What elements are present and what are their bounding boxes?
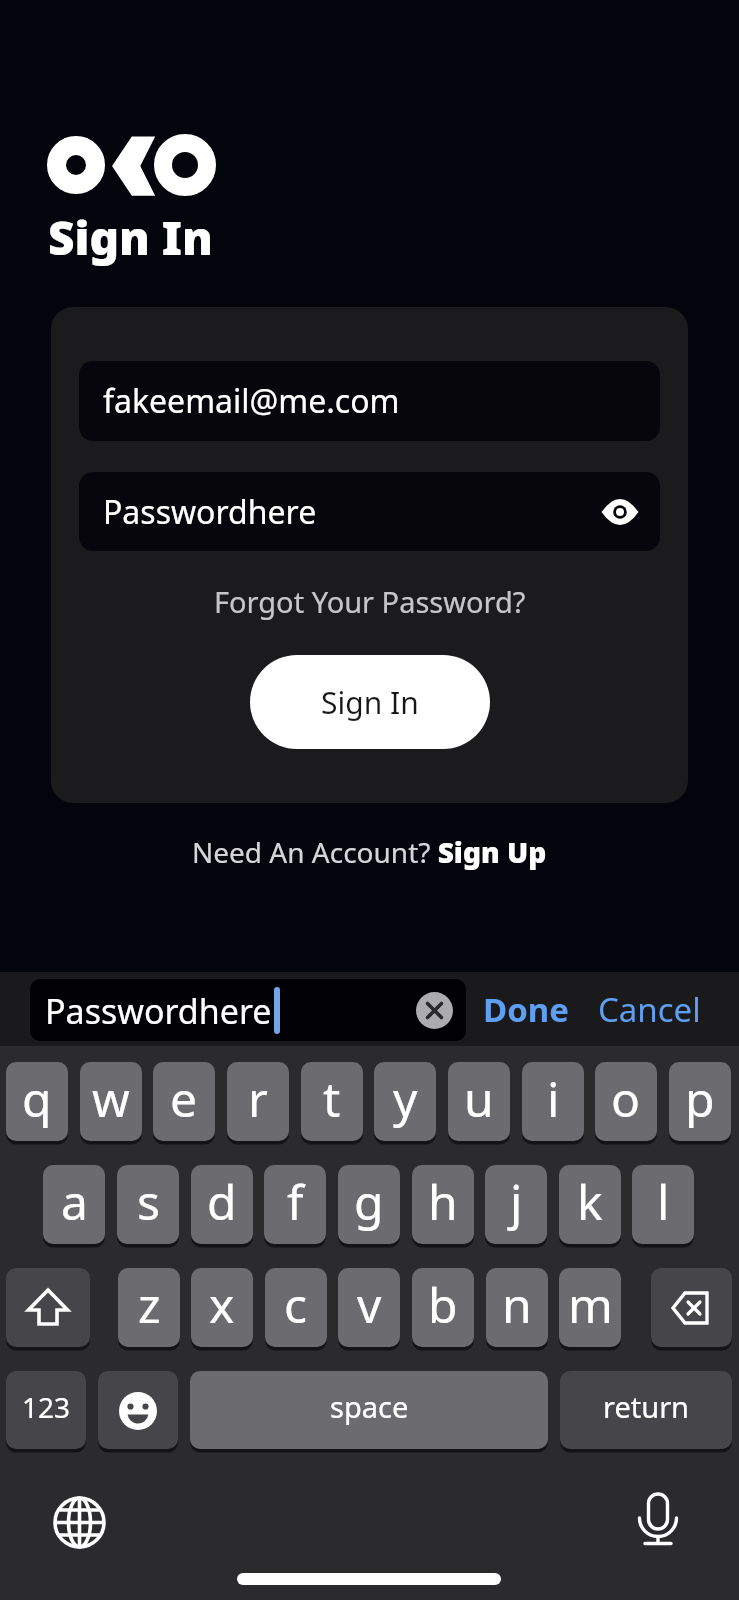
staticText: p — [685, 1066, 715, 1131]
button[interactable]: Sign In — [250, 655, 490, 749]
button[interactable] — [637, 1490, 679, 1548]
staticText: k — [577, 1169, 603, 1234]
button[interactable]: h — [412, 1165, 474, 1245]
button[interactable]: Passwordhere — [79, 472, 660, 551]
staticText: z — [138, 1272, 161, 1337]
staticText: t — [323, 1066, 341, 1131]
staticText: v — [357, 1272, 382, 1337]
staticText: Need An Account? Sign Up — [192, 833, 547, 871]
staticText: b — [428, 1272, 458, 1337]
staticText: Passwordhere — [45, 988, 272, 1034]
button[interactable]: f — [264, 1165, 326, 1245]
staticText: u — [464, 1066, 494, 1131]
button[interactable]: n — [486, 1268, 548, 1348]
staticText: n — [502, 1272, 532, 1337]
staticText: 123 — [22, 1388, 71, 1426]
button[interactable]: fakeemail@me.com — [79, 361, 660, 441]
button[interactable]: space — [190, 1371, 548, 1450]
button[interactable]: Need An Account? Sign Up — [192, 833, 547, 871]
button[interactable]: p — [669, 1062, 731, 1142]
staticText: Passwordhere — [103, 490, 317, 534]
button[interactable]: j — [485, 1165, 547, 1245]
button[interactable]: Forgot Your Password? — [214, 582, 526, 621]
button[interactable]: e — [153, 1062, 215, 1142]
button[interactable]: Done — [483, 972, 569, 1046]
staticText: a — [61, 1169, 88, 1234]
button[interactable]: Passwordhere — [30, 979, 466, 1041]
button[interactable]: b — [412, 1268, 474, 1348]
button[interactable]: c — [265, 1268, 327, 1348]
button[interactable]: o — [595, 1062, 657, 1142]
button[interactable]: r — [227, 1062, 289, 1142]
staticText: Cancel — [598, 987, 701, 1032]
button[interactable]: q — [6, 1062, 68, 1142]
staticText: space — [330, 1387, 409, 1426]
staticText: d — [207, 1169, 237, 1234]
staticText: f — [287, 1169, 304, 1234]
staticText: c — [284, 1272, 308, 1337]
button[interactable]: k — [559, 1165, 621, 1245]
button[interactable]: w — [80, 1062, 142, 1142]
button[interactable]: i — [522, 1062, 584, 1142]
staticText: Sign In — [321, 682, 419, 723]
staticText: q — [22, 1066, 52, 1131]
button[interactable]: d — [191, 1165, 253, 1245]
staticText: g — [354, 1169, 384, 1234]
button[interactable]: a — [43, 1165, 105, 1245]
button[interactable]: t — [301, 1062, 363, 1142]
button[interactable]: 123 — [6, 1371, 86, 1450]
button[interactable]: l — [632, 1165, 694, 1245]
button[interactable]: u — [448, 1062, 510, 1142]
staticText: s — [137, 1169, 160, 1234]
staticText: w — [92, 1066, 130, 1131]
button[interactable]: v — [338, 1268, 400, 1348]
staticText: x — [209, 1272, 235, 1337]
staticText: return — [603, 1387, 690, 1426]
staticText: l — [657, 1169, 670, 1234]
staticText: fakeemail@me.com — [103, 379, 400, 423]
button[interactable]: return — [560, 1371, 732, 1450]
staticText: h — [428, 1169, 458, 1234]
button[interactable]: g — [338, 1165, 400, 1245]
button[interactable]: z — [118, 1268, 180, 1348]
staticText: m — [568, 1272, 613, 1337]
staticText: e — [170, 1066, 198, 1131]
staticText: Forgot Your Password? — [214, 582, 526, 621]
button[interactable] — [53, 1496, 106, 1549]
button[interactable] — [6, 1268, 90, 1348]
staticText: o — [611, 1066, 641, 1131]
staticText: i — [547, 1066, 560, 1131]
staticText: j — [510, 1169, 523, 1234]
button[interactable]: Cancel — [598, 972, 701, 1046]
button[interactable]: x — [191, 1268, 253, 1348]
staticText: r — [248, 1066, 268, 1131]
button[interactable] — [416, 992, 453, 1029]
staticText: y — [393, 1066, 418, 1131]
button[interactable]: y — [374, 1062, 436, 1142]
button[interactable] — [98, 1371, 178, 1450]
button[interactable] — [651, 1268, 732, 1348]
button[interactable]: m — [559, 1268, 621, 1348]
button[interactable]: s — [117, 1165, 179, 1245]
staticText: Done — [483, 987, 569, 1032]
staticText: Sign In — [48, 206, 213, 269]
